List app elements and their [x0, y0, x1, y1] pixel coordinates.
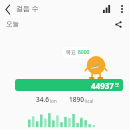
staticText: 목표 — [66, 49, 78, 56]
button[interactable] — [0, 109, 130, 128]
button[interactable]: Back — [0, 1, 16, 17]
staticText: km — [49, 98, 57, 104]
button[interactable]: More options — [114, 1, 129, 16]
staticText: 6000 — [78, 49, 90, 56]
staticText: 34.6 — [36, 95, 49, 104]
button[interactable]: Share — [112, 18, 125, 31]
staticText: 오늘 — [6, 20, 19, 28]
staticText: 보 — [115, 82, 120, 88]
staticText: 44937 — [91, 80, 114, 91]
staticText: 1890 — [69, 95, 84, 104]
button[interactable]: Trends — [99, 1, 114, 16]
staticText: 걸음 수 — [16, 4, 39, 14]
staticText: kcal — [84, 98, 94, 104]
